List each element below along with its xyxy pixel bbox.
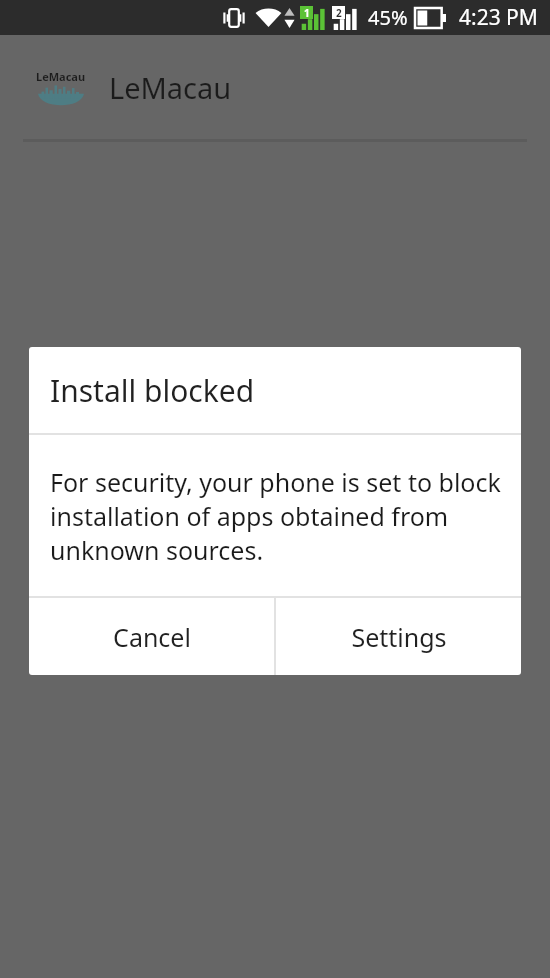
staticText: LeMacau bbox=[109, 68, 232, 107]
other: LeMacau app icon bbox=[33, 65, 89, 111]
staticText: 45% bbox=[368, 4, 408, 31]
button[interactable]: Cancel bbox=[29, 598, 274, 675]
staticText: 4:23 PM bbox=[459, 3, 538, 32]
button[interactable]: Settings bbox=[276, 598, 521, 675]
staticText: Install blocked bbox=[50, 370, 255, 411]
staticText: LeMacau bbox=[36, 69, 86, 84]
staticText: Cancel bbox=[113, 620, 191, 654]
staticText: Settings bbox=[351, 620, 447, 654]
staticText: For security, your phone is set to block… bbox=[50, 465, 505, 567]
staticText: 1 bbox=[304, 6, 310, 19]
staticText: 2 bbox=[336, 6, 342, 19]
